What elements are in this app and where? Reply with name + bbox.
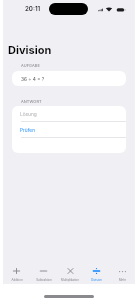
staticText: AUFGABE bbox=[21, 63, 40, 68]
button[interactable]: Addition bbox=[3, 263, 30, 281]
other: Division bbox=[93, 268, 100, 274]
button[interactable]: Multiplikation bbox=[57, 263, 83, 281]
staticText: Subtraktion bbox=[36, 278, 52, 281]
other: Subtraktion bbox=[40, 268, 47, 274]
staticText: Mehr bbox=[119, 278, 126, 281]
staticText: ANTWORT bbox=[21, 99, 42, 104]
other: Addition bbox=[13, 268, 20, 274]
staticText: Multiplikation bbox=[61, 278, 79, 281]
button[interactable]: Subtraktion bbox=[30, 263, 57, 281]
staticText: Division bbox=[91, 278, 102, 281]
staticText: 20:11 bbox=[25, 5, 41, 13]
staticText: Lösung bbox=[20, 111, 37, 117]
staticText: Addition bbox=[11, 278, 23, 281]
button[interactable]: Prüfen bbox=[12, 122, 126, 137]
button[interactable]: Mehr bbox=[109, 263, 135, 281]
staticText: Prüfen bbox=[20, 127, 35, 133]
staticText: Division bbox=[8, 43, 52, 56]
other: Mehr bbox=[119, 268, 126, 274]
button[interactable]: Division bbox=[83, 263, 109, 281]
staticText: 36 ÷ 4 = ? bbox=[21, 76, 45, 82]
other: Multiplikation bbox=[67, 268, 74, 274]
